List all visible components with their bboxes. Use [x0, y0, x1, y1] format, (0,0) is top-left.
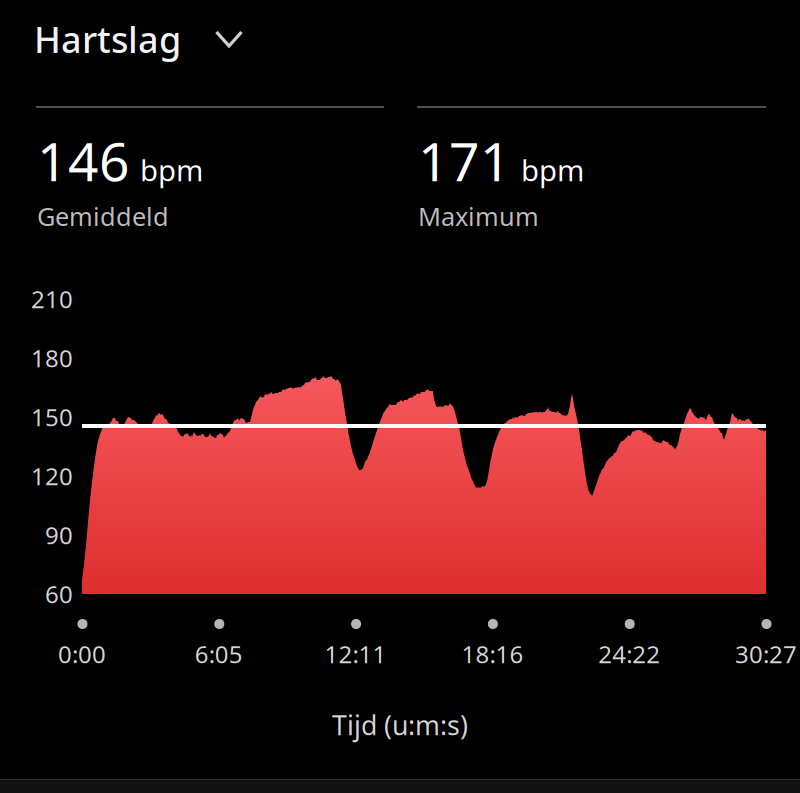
staticText: 146	[37, 125, 130, 196]
staticText: 180	[31, 342, 73, 374]
staticText: 24:22	[598, 638, 660, 670]
staticText: bpm	[140, 150, 203, 189]
staticText: Maximum	[418, 199, 539, 233]
staticText: 171	[418, 125, 511, 196]
staticText: 0:00	[58, 638, 106, 670]
staticText: 6:05	[195, 638, 243, 670]
staticText: 60	[45, 578, 73, 610]
staticText: Tijd (u:m:s)	[332, 707, 468, 743]
staticText: Hartslag	[34, 15, 181, 63]
staticText: Gemiddeld	[37, 199, 169, 233]
staticText: 18:16	[461, 638, 523, 670]
staticText: 90	[45, 519, 73, 551]
staticText: 150	[31, 401, 73, 433]
staticText: 210	[31, 283, 73, 315]
staticText: 12:11	[325, 638, 387, 670]
staticText: 30:27	[735, 638, 797, 670]
staticText: 120	[31, 460, 73, 492]
button[interactable]: Hartslag	[34, 7, 314, 71]
staticText: bpm	[521, 150, 584, 189]
